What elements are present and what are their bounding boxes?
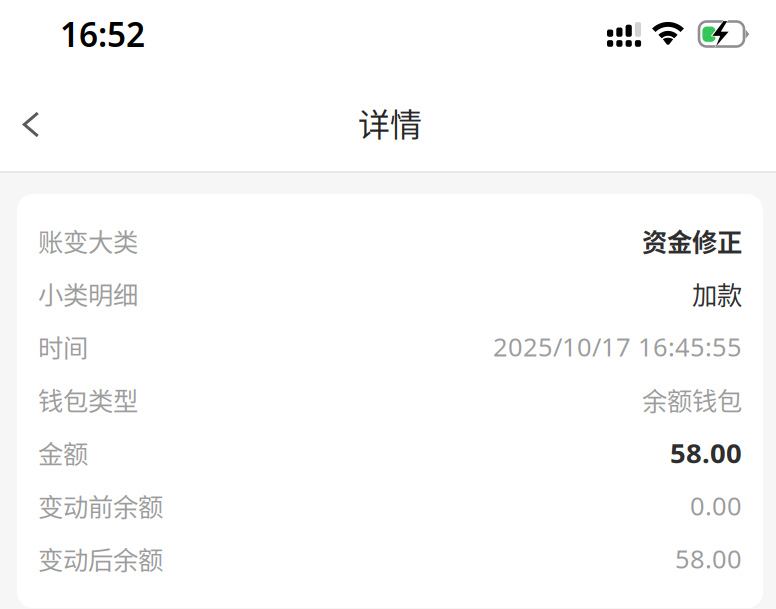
staticText: 0.00	[690, 488, 742, 523]
staticText: 时间	[38, 328, 88, 365]
staticText: 16:52	[60, 12, 145, 56]
staticText: 账变大类	[38, 222, 138, 259]
staticText: 变动前余额	[38, 487, 163, 524]
button[interactable]: Back	[9, 96, 53, 152]
staticText: 详情	[358, 99, 422, 146]
staticText: 余额钱包	[642, 381, 742, 418]
staticText: 钱包类型	[38, 381, 138, 418]
staticText: 58.00	[675, 541, 742, 576]
staticText: 小类明细	[38, 275, 138, 312]
staticText: 加款	[692, 275, 742, 312]
staticText: 58.00	[670, 434, 742, 471]
staticText: 变动后余额	[38, 540, 163, 577]
staticText: 2025/10/17 16:45:55	[493, 329, 742, 364]
staticText: 资金修正	[642, 222, 742, 259]
staticText: 金额	[38, 434, 88, 471]
